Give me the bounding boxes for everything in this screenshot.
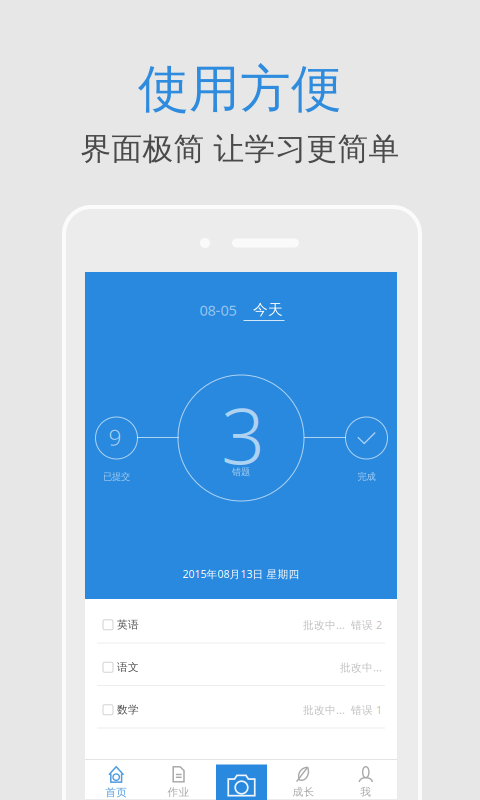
staticText: 数学 bbox=[117, 703, 139, 716]
staticText: 使用方便 bbox=[138, 58, 342, 120]
staticText: 作业 bbox=[168, 786, 190, 799]
staticText: 9 bbox=[108, 422, 121, 452]
staticText: 我 bbox=[360, 785, 371, 798]
staticText: 批改中... bbox=[340, 660, 382, 674]
staticText: 2015年08月13日 星期四 bbox=[182, 567, 299, 581]
button[interactable]: 成长 bbox=[272, 759, 335, 799]
button[interactable]: Take photo bbox=[216, 764, 267, 800]
button[interactable]: 我 bbox=[335, 759, 397, 799]
button[interactable]: 今天 bbox=[243, 302, 284, 321]
staticText: 已提交 bbox=[103, 471, 130, 482]
button[interactable]: 作业 bbox=[147, 759, 210, 799]
staticText: 批改中... 错误 2 bbox=[303, 618, 382, 632]
button[interactable]: 首页 bbox=[85, 759, 147, 799]
staticText: 错题 bbox=[232, 466, 250, 478]
staticText: 今天 bbox=[253, 300, 283, 318]
staticText: 批改中... 错误 1 bbox=[303, 703, 382, 717]
button[interactable]: 08-05 bbox=[193, 302, 243, 318]
staticText: 完成 bbox=[357, 471, 375, 482]
staticText: 语文 bbox=[117, 661, 139, 674]
staticText: 08-05 bbox=[199, 300, 236, 320]
button[interactable]: 数学 bbox=[85, 686, 397, 727]
staticText: 界面极简 让学习更简单 bbox=[80, 130, 399, 168]
staticText: 首页 bbox=[105, 786, 127, 799]
staticText: 英语 bbox=[117, 618, 139, 631]
staticText: 成长 bbox=[292, 785, 314, 798]
staticText: 3 bbox=[221, 383, 265, 485]
button[interactable]: 语文 bbox=[85, 643, 397, 685]
button[interactable]: 英语 bbox=[85, 601, 397, 642]
